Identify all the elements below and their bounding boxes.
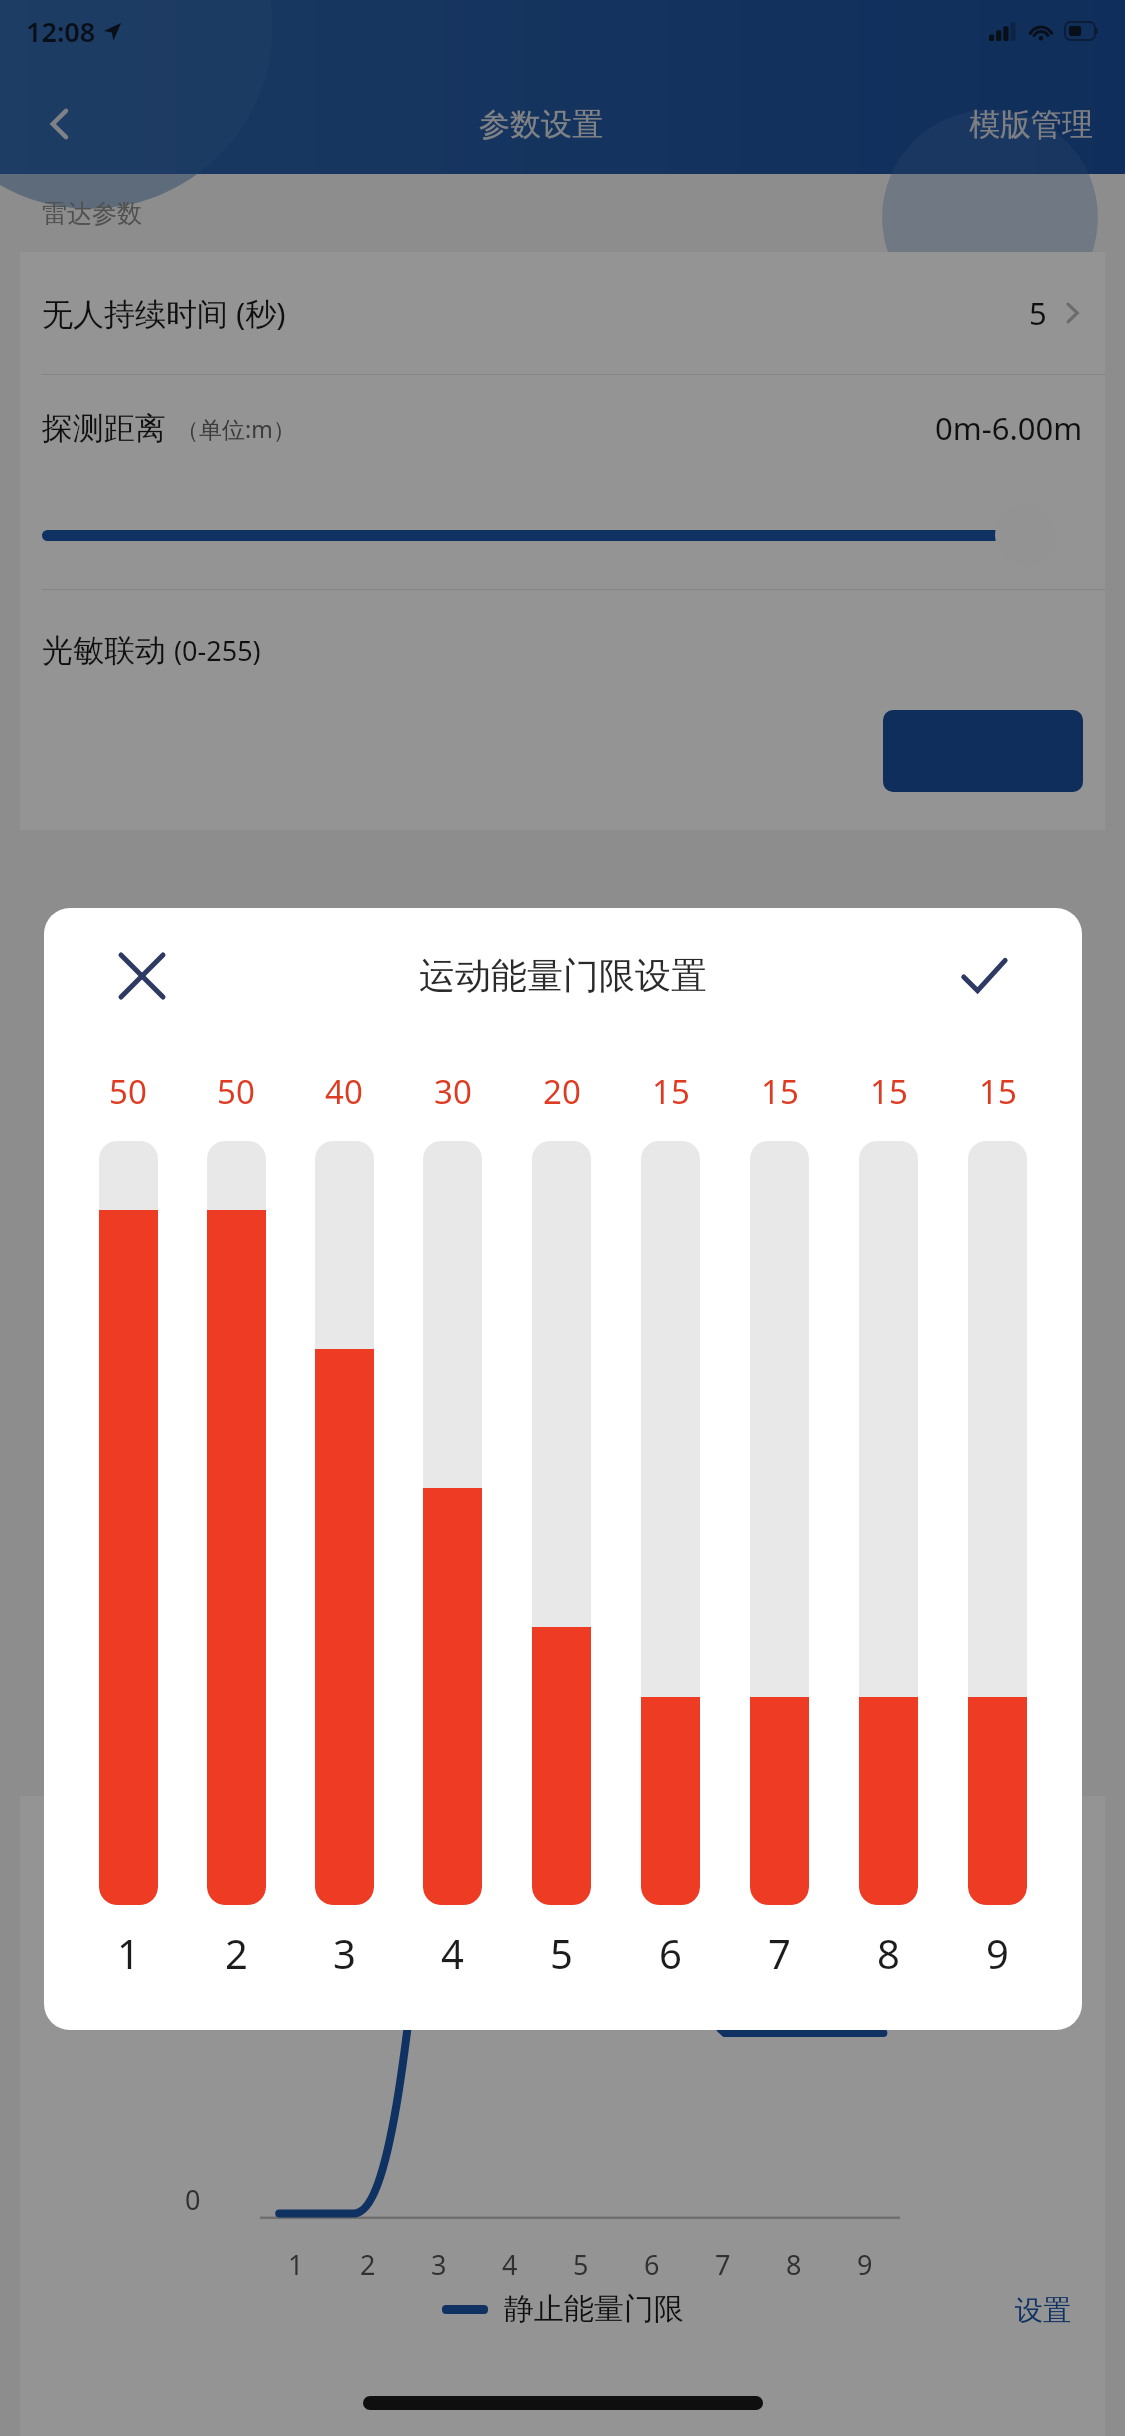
button[interactable]: Confirm bbox=[942, 934, 1026, 1018]
staticText: 8 bbox=[786, 2246, 802, 2283]
staticText: 1 bbox=[288, 2246, 304, 2283]
staticText: 5 bbox=[573, 2246, 589, 2283]
button[interactable] bbox=[99, 1141, 158, 1905]
staticText: 2 bbox=[225, 1926, 248, 1980]
staticText: 15 bbox=[870, 1069, 908, 1114]
staticText: 50 bbox=[109, 1069, 147, 1114]
button[interactable] bbox=[423, 1141, 482, 1905]
staticText: 6 bbox=[659, 1926, 682, 1980]
button[interactable]: 设置 bbox=[1007, 2285, 1079, 2336]
staticText: 3 bbox=[431, 2246, 447, 2283]
staticText: 雷达参数 bbox=[42, 198, 142, 229]
staticText: 9 bbox=[986, 1926, 1009, 1980]
staticText: 运动能量门限设置 bbox=[419, 953, 707, 998]
staticText: 30 bbox=[434, 1069, 472, 1114]
staticText: 参数设置 bbox=[479, 105, 603, 144]
staticText: 40 bbox=[325, 1069, 363, 1114]
button[interactable]: 切换 bbox=[1007, 1836, 1079, 1887]
staticText: 15 bbox=[761, 1069, 799, 1114]
staticText: 4 bbox=[502, 2246, 518, 2283]
staticText: 6 bbox=[644, 2246, 660, 2283]
staticText: 8 bbox=[877, 1926, 900, 1980]
staticText: 4 bbox=[441, 1926, 464, 1980]
staticText: 15 bbox=[979, 1069, 1017, 1114]
staticText: 无人持续时间 (秒) bbox=[42, 292, 286, 334]
staticText: （单位:m） bbox=[176, 413, 296, 444]
staticText: 设置 bbox=[1015, 2293, 1071, 2328]
staticText: 5 bbox=[550, 1926, 573, 1980]
button[interactable] bbox=[641, 1141, 700, 1905]
button[interactable]: 模版管理 bbox=[963, 95, 1099, 154]
staticText: 20 bbox=[543, 1069, 581, 1114]
staticText: 0 bbox=[185, 2181, 201, 2218]
staticText: 1 bbox=[117, 1926, 140, 1980]
staticText: 光敏联动 bbox=[42, 631, 166, 670]
button[interactable] bbox=[968, 1141, 1027, 1905]
staticText: 3 bbox=[333, 1926, 356, 1980]
staticText: 0m-6.00m bbox=[935, 407, 1083, 449]
button[interactable] bbox=[315, 1141, 374, 1905]
staticText: 2 bbox=[360, 2246, 376, 2283]
button[interactable] bbox=[207, 1141, 266, 1905]
button[interactable] bbox=[883, 710, 1083, 792]
button[interactable]: Back bbox=[0, 74, 120, 174]
button[interactable] bbox=[750, 1141, 809, 1905]
staticText: 50 bbox=[217, 1069, 255, 1114]
staticText: 静止能量门限 bbox=[504, 2290, 684, 2328]
staticText: 5 bbox=[1029, 292, 1047, 334]
button[interactable] bbox=[859, 1141, 918, 1905]
button[interactable]: Cancel bbox=[100, 934, 184, 1018]
button[interactable]: 无人持续时间 (秒) bbox=[20, 252, 1105, 374]
staticText: 模版管理 bbox=[969, 105, 1093, 144]
staticText: 探测距离 bbox=[42, 409, 166, 448]
button[interactable] bbox=[532, 1141, 591, 1905]
staticText: (0-255) bbox=[174, 632, 261, 669]
staticText: 7 bbox=[715, 2246, 731, 2283]
staticText: 7 bbox=[768, 1926, 791, 1980]
staticText: 12:08 bbox=[26, 13, 96, 50]
staticText: 9 bbox=[857, 2246, 873, 2283]
staticText: 切换 bbox=[1015, 1844, 1071, 1879]
staticText: 15 bbox=[652, 1069, 690, 1114]
